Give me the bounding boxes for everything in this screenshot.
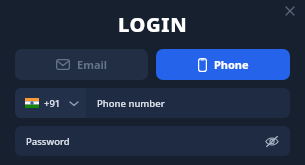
button[interactable]: Select country code [15, 88, 86, 118]
button[interactable]: Password [15, 126, 290, 156]
button[interactable]: Close [280, 1, 300, 21]
button[interactable]: Show password [263, 132, 281, 150]
button[interactable]: Email [15, 49, 148, 80]
staticText: Email [77, 57, 108, 72]
staticText: +91 [44, 97, 61, 110]
staticText: Password [26, 135, 70, 148]
staticText: Phone [214, 57, 249, 72]
staticText: LOGIN [118, 11, 188, 38]
button[interactable]: Phone [156, 49, 290, 80]
staticText: Phone number [97, 97, 165, 110]
